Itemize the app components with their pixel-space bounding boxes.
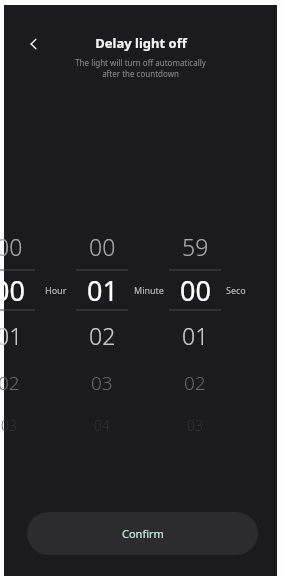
staticText: 01	[87, 272, 118, 309]
staticText: 03	[91, 370, 113, 396]
staticText: Minute	[134, 284, 164, 296]
staticText: Confirm	[122, 526, 164, 541]
staticText: 00	[0, 231, 23, 262]
staticText: 01	[0, 320, 23, 351]
staticText: 03	[1, 416, 17, 435]
staticText: 03	[187, 416, 203, 435]
staticText: 00	[0, 272, 25, 309]
staticText: 00	[180, 272, 211, 309]
staticText: 04	[94, 416, 110, 435]
staticText: The light will turn off automatically af…	[75, 57, 206, 79]
staticText: 01	[182, 320, 209, 351]
staticText: 00	[89, 231, 116, 262]
button[interactable]: Back	[21, 31, 47, 57]
staticText: 02	[184, 370, 206, 396]
staticText: 02	[89, 320, 116, 351]
staticText: 59	[182, 231, 209, 262]
staticText: Delay light off	[95, 34, 187, 52]
staticText: 02	[0, 370, 20, 396]
button[interactable]: Confirm	[27, 512, 258, 555]
staticText: Second	[226, 284, 251, 296]
staticText: Hour	[45, 284, 67, 296]
